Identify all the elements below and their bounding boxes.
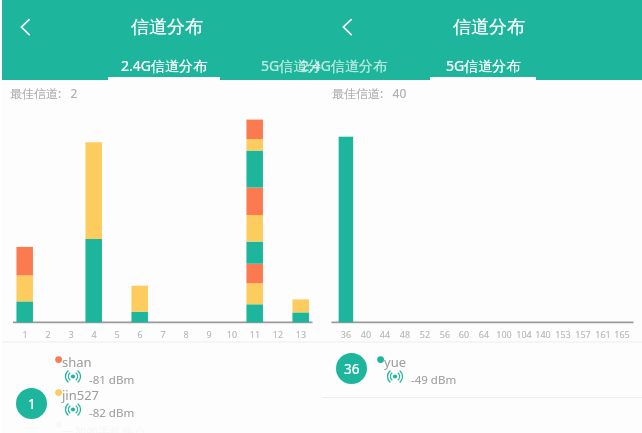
staticText: 153 (503, 328, 623, 340)
staticText: 40 (306, 328, 426, 340)
button[interactable]: Back (332, 12, 362, 42)
button[interactable]: Back (10, 12, 40, 42)
button[interactable]: yue (384, 353, 406, 371)
staticText: 165 (562, 328, 642, 340)
staticText: 5G信道分布 (261, 56, 336, 75)
staticText: 6 (80, 328, 200, 340)
button[interactable]: jin527 (62, 386, 100, 404)
button[interactable]: 36 (336, 353, 367, 384)
button[interactable]: shan (62, 353, 92, 371)
staticText: 2.4G信道分布 (121, 56, 207, 75)
staticText: 信道分布 (429, 16, 549, 39)
staticText: -49 dBm (411, 372, 457, 388)
staticText: 64 (424, 328, 544, 340)
staticText: 1 (28, 395, 36, 413)
staticText: 52 (365, 328, 485, 340)
staticText: -82 dBm (89, 405, 135, 421)
staticText: 信道分布 (107, 16, 227, 39)
staticText: 36 (344, 360, 360, 378)
staticText: 44 (325, 328, 445, 340)
staticText: 7 (103, 328, 223, 340)
staticText: 60 (404, 328, 524, 340)
staticText: 10 (172, 328, 292, 340)
staticText: 11 (195, 328, 315, 340)
staticText: 3 (11, 328, 131, 340)
staticText: 1 (0, 328, 85, 340)
button[interactable]: 2.4G信道分布 (94, 50, 234, 80)
staticText: 最佳信道: 2 (10, 85, 78, 101)
staticText: 161 (543, 328, 642, 340)
button[interactable]: 5G信道分布 (413, 50, 553, 80)
staticText: 5G信道分布 (446, 56, 521, 75)
button[interactable]: 1 (16, 388, 47, 419)
staticText: 2 (0, 328, 108, 340)
staticText: -81 dBm (89, 372, 135, 388)
staticText: 48 (345, 328, 465, 340)
staticText: 8 (126, 328, 246, 340)
staticText: 140 (483, 328, 603, 340)
button[interactable]: 5G信道分布 (228, 50, 368, 80)
staticText: 2.4G信道分布 (301, 56, 387, 75)
staticText: 104 (464, 328, 584, 340)
staticText: 5 (57, 328, 177, 340)
staticText: 最佳信道: 40 (332, 85, 407, 101)
staticText: 4 (34, 328, 154, 340)
staticText: 13 (241, 328, 361, 340)
staticText: 12 (218, 328, 338, 340)
staticText: 36 (286, 328, 406, 340)
staticText: 9 (149, 328, 269, 340)
staticText: 157 (523, 328, 642, 340)
staticText: 56 (385, 328, 505, 340)
staticText: 100 (444, 328, 564, 340)
button[interactable]: 2.4G信道分布 (274, 50, 414, 80)
